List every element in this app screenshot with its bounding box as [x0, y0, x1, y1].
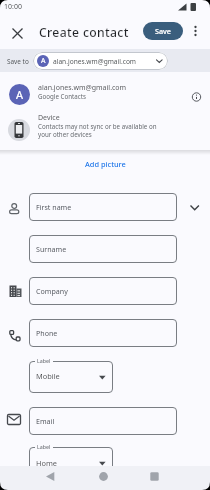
button[interactable]: [94, 467, 114, 487]
button[interactable]: [9, 26, 27, 42]
staticText: alan.jones.wm@gmail.com: [38, 83, 127, 93]
button[interactable]: [145, 467, 165, 487]
button[interactable]: First name: [29, 193, 177, 221]
staticText: Create contact: [39, 24, 129, 41]
button[interactable]: [189, 90, 204, 105]
staticText: Add picture: [85, 159, 126, 169]
button[interactable]: [186, 199, 203, 215]
button[interactable]: Save: [143, 22, 183, 40]
staticText: Phone: [36, 328, 58, 338]
button[interactable]: Surname: [29, 235, 177, 263]
button[interactable]: [189, 24, 202, 38]
staticText: Company: [36, 286, 68, 296]
staticText: Surname: [36, 244, 67, 254]
button[interactable]: Email: [29, 407, 177, 435]
button[interactable]: [0, 76, 210, 113]
staticText: A: [41, 56, 46, 66]
staticText: Google Contacts: [38, 92, 86, 100]
button[interactable]: A: [33, 52, 168, 70]
staticText: Label: [37, 357, 51, 364]
button[interactable]: Add picture: [72, 156, 138, 172]
staticText: Home: [36, 458, 58, 468]
staticText: First name: [36, 202, 72, 212]
staticText: A: [16, 87, 24, 102]
staticText: Save: [155, 26, 171, 36]
staticText: Mobile: [36, 371, 60, 381]
staticText: Label: [37, 443, 51, 450]
staticText: alan.jones.wm@gmail.com: [53, 57, 137, 66]
button[interactable]: [0, 113, 210, 148]
staticText: your other devices: [38, 130, 92, 138]
staticText: Save to: [7, 57, 29, 66]
staticText: 10:00: [4, 2, 22, 12]
button[interactable]: [29, 447, 113, 479]
button[interactable]: Phone: [29, 319, 177, 347]
button[interactable]: [40, 467, 60, 487]
button[interactable]: Company: [29, 277, 177, 305]
button[interactable]: [29, 361, 113, 393]
staticText: Email: [36, 416, 55, 426]
staticText: Device: [38, 113, 60, 123]
staticText: Contacts may not sync or be available on: [38, 122, 157, 130]
